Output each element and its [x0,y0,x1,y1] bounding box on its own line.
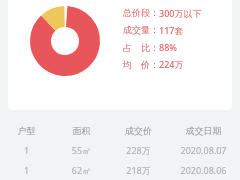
staticText: 均 价： [123,58,159,70]
staticText: 面积 [53,125,110,136]
button[interactable]: 户型 [0,120,240,140]
staticText: 62㎡ [53,164,110,176]
staticText: 228万 [110,144,167,156]
staticText: 218万 [110,164,167,176]
staticText: 成交日期 [167,125,240,136]
button[interactable]: 1 [0,140,240,160]
staticText: 300万以下 [159,7,202,19]
staticText: 88% [159,41,177,53]
staticText: 1 [0,164,53,176]
staticText: 2020.08.06 [167,164,240,176]
staticText: 2020.08.07 [167,144,240,156]
button[interactable]: 1 [0,160,240,180]
staticText: 224万 [159,58,184,70]
staticText: 占 比： [123,41,159,53]
staticText: 成交价 [110,125,167,136]
staticText: 1 [0,144,53,156]
staticText: 户型 [0,125,53,136]
staticText: 成交量： [123,24,159,35]
staticText: 117套 [159,24,184,36]
button[interactable]: 成交总价段占比环形图 [30,6,100,76]
staticText: 总价段： [123,7,159,18]
staticText: 55㎡ [53,144,110,156]
